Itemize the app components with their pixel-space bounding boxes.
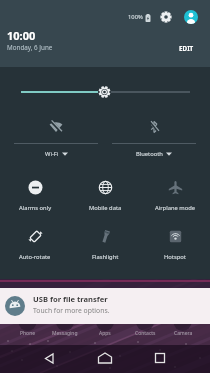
- button[interactable]: Mobile data: [70, 180, 140, 226]
- staticText: 100%: [128, 13, 143, 21]
- staticText: Mobile data: [89, 204, 122, 212]
- staticText: EDIT: [179, 44, 194, 53]
- button[interactable]: Alarms only: [0, 180, 70, 226]
- staticText: Contacts: [135, 330, 156, 337]
- button[interactable]: [38, 350, 60, 372]
- staticText: USB for file transfer: [33, 294, 108, 304]
- staticText: Airplane mode: [155, 204, 196, 212]
- staticText: Camera: [174, 330, 193, 337]
- staticText: Touch for more options.: [33, 306, 110, 315]
- staticText: Messaging: [52, 330, 78, 337]
- staticText: Auto-rotate: [19, 253, 51, 261]
- staticText: Phone: [20, 330, 36, 337]
- staticText: Monday, 6 June: [7, 43, 53, 52]
- staticText: Flashlight: [92, 253, 119, 261]
- button[interactable]: Hotspot: [140, 229, 210, 275]
- button[interactable]: Airplane mode: [140, 180, 210, 226]
- button[interactable]: USB for file transfer: [0, 288, 210, 324]
- button[interactable]: [184, 10, 198, 24]
- button[interactable]: Auto-rotate: [0, 229, 70, 275]
- staticText: Bluetooth: [136, 150, 163, 158]
- staticText: Hotspot: [164, 253, 186, 261]
- staticText: Wi-Fi: [45, 150, 59, 158]
- button[interactable]: Flashlight: [70, 229, 140, 275]
- button[interactable]: Wi-Fi: [7, 108, 105, 166]
- button[interactable]: [150, 350, 172, 372]
- button[interactable]: Bluetooth: [105, 108, 203, 166]
- button[interactable]: [160, 11, 172, 23]
- button[interactable]: EDIT: [170, 40, 202, 56]
- button[interactable]: [94, 350, 116, 372]
- staticText: 10:00: [7, 28, 36, 43]
- staticText: Alarms only: [19, 204, 52, 212]
- staticText: Apps: [99, 330, 111, 337]
